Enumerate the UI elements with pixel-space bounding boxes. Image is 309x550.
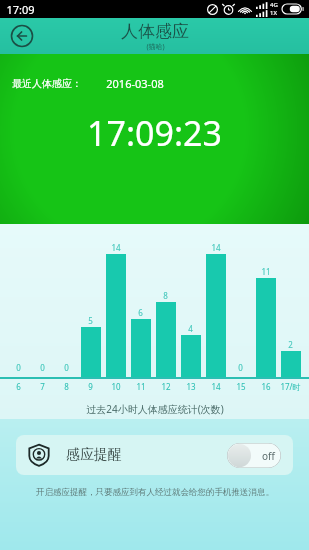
staticText: 11 [261, 266, 271, 277]
staticText: 8 [163, 290, 168, 301]
staticText: 7 [40, 381, 45, 392]
staticText: 2 [288, 339, 293, 350]
staticText: 感应提醒 [66, 446, 122, 464]
other: Sensor alert [28, 444, 50, 466]
staticText: 最近人体感应： [12, 77, 82, 90]
staticText: 17:09:23 [87, 110, 222, 156]
button[interactable]: Toggle sensor alert off [227, 443, 281, 468]
staticText: 12 [161, 381, 171, 392]
staticText: 0 [64, 362, 69, 373]
staticText: 17:09 [6, 2, 35, 17]
staticText: 10 [111, 381, 121, 392]
staticText: (猫哈) [146, 42, 165, 52]
staticText: 14 [211, 381, 221, 392]
staticText: 0 [16, 362, 21, 373]
staticText: 17/时 [280, 381, 301, 392]
staticText: 6 [138, 307, 143, 318]
staticText: 4 [188, 323, 193, 334]
staticText: 4G [270, 1, 278, 9]
button[interactable]: Sensor alert [16, 435, 293, 475]
button[interactable]: Back [10, 24, 34, 48]
staticText: 13 [186, 381, 196, 392]
staticText: 15 [236, 381, 246, 392]
staticText: 6 [16, 381, 21, 392]
staticText: 14 [211, 242, 221, 253]
staticText: off [262, 449, 275, 463]
staticText: 过去24小时人体感应统计(次数) [86, 402, 224, 416]
staticText: 8 [64, 381, 69, 392]
staticText: 14 [111, 242, 121, 253]
staticText: 1X [270, 9, 277, 17]
staticText: 5 [88, 315, 93, 326]
staticText: 9 [88, 381, 93, 392]
staticText: 11 [136, 381, 146, 392]
staticText: 0 [40, 362, 45, 373]
staticText: 人体感应 [121, 21, 189, 42]
staticText: 开启感应提醒，只要感应到有人经过就会给您的手机推送消息。 [36, 487, 274, 498]
staticText: 2016-03-08 [106, 76, 164, 91]
staticText: 16 [261, 381, 271, 392]
staticText: 0 [238, 362, 243, 373]
